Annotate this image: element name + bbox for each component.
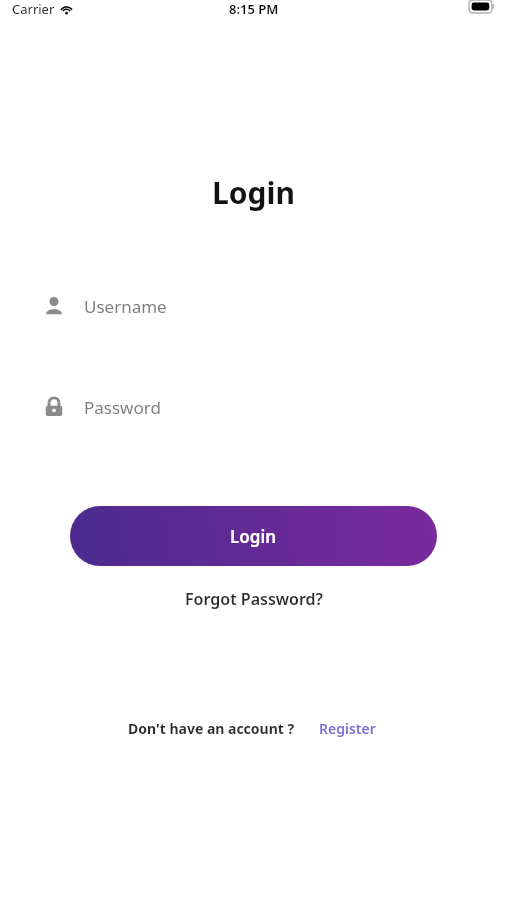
staticText: Don't have an account ? [128,719,295,738]
button[interactable]: Forgot Password? [175,584,333,614]
staticText: Login [230,525,277,548]
button[interactable]: Password [0,384,507,430]
staticText: Password [84,396,161,419]
button[interactable]: Username [0,283,507,329]
button[interactable]: Register [315,716,380,741]
button[interactable]: Login [70,506,437,566]
staticText: Forgot Password? [185,588,323,610]
staticText: 8:15 PM [229,0,279,18]
staticText: Carrier [12,0,55,18]
staticText: Username [84,295,167,318]
staticText: Login [212,172,295,213]
staticText: Register [319,719,376,738]
